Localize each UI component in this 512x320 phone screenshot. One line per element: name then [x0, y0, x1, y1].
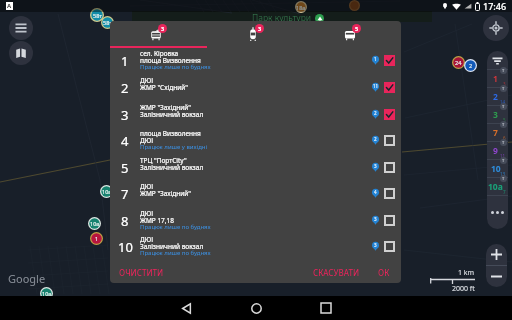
button[interactable]: ОК: [375, 264, 393, 281]
button[interactable]: Route marker 10а: [88, 217, 101, 230]
staticText: 1: [493, 73, 498, 85]
staticText: ДЮІ: [140, 136, 154, 145]
button[interactable]: Route marker 2: [464, 59, 477, 72]
staticText: Працює лише по буднях: [140, 249, 211, 257]
staticText: 3: [503, 81, 506, 87]
staticText: 13: [500, 171, 506, 177]
staticText: 1: [121, 52, 129, 70]
button[interactable]: 7: [487, 123, 508, 141]
staticText: 58т: [103, 19, 112, 26]
button[interactable]: 10: [487, 159, 508, 177]
staticText: 3: [374, 216, 377, 222]
staticText: 3: [493, 109, 498, 121]
staticText: ЖМР "Східний": [140, 83, 188, 92]
staticText: 7: [493, 127, 498, 139]
button[interactable]: 4: [110, 130, 401, 154]
button[interactable]: 3: [487, 105, 508, 123]
button[interactable]: Route marker 10а: [40, 287, 53, 300]
staticText: 6: [503, 135, 506, 141]
button[interactable]: Route marker: [349, 0, 360, 11]
button[interactable]: 9: [487, 141, 508, 159]
button[interactable]: 5: [110, 157, 401, 181]
staticText: 5: [355, 25, 359, 32]
staticText: 10а: [42, 290, 52, 297]
button[interactable]: 7: [110, 183, 401, 207]
staticText: Залізничний вокзал: [140, 242, 204, 251]
staticText: T: [502, 86, 505, 91]
staticText: ТРЦ "ПортCity": [140, 156, 187, 165]
staticText: 10: [118, 238, 133, 256]
staticText: 24: [455, 59, 462, 66]
staticText: 2: [493, 91, 498, 103]
button[interactable]: Route marker 1: [90, 232, 103, 245]
staticText: 4: [121, 132, 129, 150]
staticText: Працює лише по буднях: [140, 223, 211, 231]
button[interactable]: 1: [487, 69, 508, 87]
button[interactable]: Zoom in: [486, 244, 507, 265]
staticText: ОЧИСТИТИ: [119, 267, 164, 278]
button[interactable]: Route marker 10а: [100, 185, 113, 198]
staticText: 2: [374, 110, 377, 116]
button[interactable]: ОЧИСТИТИ: [116, 264, 167, 281]
button[interactable]: Route marker 24: [452, 56, 465, 69]
staticText: 2: [469, 62, 473, 69]
button[interactable]: 3: [110, 104, 401, 128]
staticText: Залізничний вокзал: [140, 163, 204, 172]
button[interactable]: Back: [151, 296, 221, 320]
button[interactable]: Route marker 58т: [90, 8, 104, 22]
staticText: 10: [491, 163, 501, 175]
staticText: 5: [503, 117, 506, 123]
staticText: 58т: [93, 12, 102, 19]
staticText: 7: [121, 185, 129, 203]
staticText: 2000 ft: [452, 284, 475, 294]
button[interactable]: Home: [221, 296, 291, 320]
staticText: сел. Кіровка: [140, 49, 179, 58]
staticText: 1: [95, 235, 99, 242]
staticText: 7: [503, 189, 506, 195]
button[interactable]: Zoom out: [486, 266, 507, 287]
staticText: 2: [121, 79, 129, 97]
button[interactable]: Transport type 2: [304, 21, 401, 46]
button[interactable]: Menu: [9, 16, 33, 40]
staticText: 3: [374, 163, 377, 169]
staticText: площа Визволення: [140, 129, 201, 138]
staticText: ДЮІ: [140, 182, 154, 191]
button[interactable]: Route marker 18а: [295, 1, 307, 13]
staticText: Працює лише у вихідні: [140, 143, 208, 151]
button[interactable]: СКАСУВАТИ: [310, 264, 363, 281]
staticText: 18а: [296, 4, 306, 11]
button[interactable]: 10a: [487, 177, 508, 195]
staticText: ДЮІ: [140, 76, 154, 85]
button[interactable]: My location: [483, 15, 509, 41]
button[interactable]: Transport type 0: [110, 21, 207, 46]
button[interactable]: Map layers: [9, 41, 33, 65]
button[interactable]: 8: [110, 210, 401, 234]
staticText: ДЮІ: [140, 235, 154, 244]
staticText: 1: [374, 56, 377, 62]
staticText: 8: [121, 212, 129, 230]
staticText: ЖМР 17,18: [140, 216, 175, 225]
staticText: 10а: [90, 220, 100, 227]
button[interactable]: Route marker 58т: [101, 16, 114, 29]
staticText: 9: [493, 145, 498, 157]
staticText: 3: [121, 106, 129, 124]
staticText: Працює лише по буднях: [140, 63, 211, 71]
staticText: СКАСУВАТИ: [313, 267, 360, 278]
staticText: T: [502, 104, 505, 109]
button[interactable]: 1: [110, 50, 401, 74]
staticText: T: [502, 176, 505, 181]
staticText: 2: [374, 136, 377, 142]
button[interactable]: Filter routes: [487, 51, 508, 69]
button[interactable]: Recents: [291, 296, 361, 320]
button[interactable]: 2: [487, 87, 508, 105]
staticText: T: [502, 140, 505, 145]
button[interactable]: More routes: [487, 195, 508, 229]
staticText: Залізничний вокзал: [140, 110, 204, 119]
staticText: ДЮІ: [140, 209, 154, 218]
button[interactable]: 10: [110, 236, 401, 260]
button[interactable]: Transport type 1: [207, 21, 304, 46]
staticText: 17:46: [483, 0, 507, 12]
staticText: 3: [161, 25, 165, 32]
staticText: Google: [8, 271, 46, 286]
button[interactable]: 2: [110, 77, 401, 101]
